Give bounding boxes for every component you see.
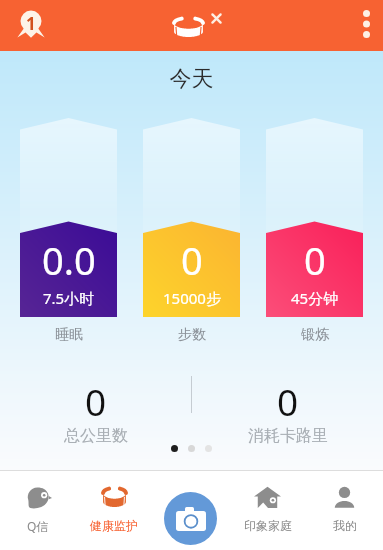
staticText: 印象家庭	[244, 518, 292, 533]
staticText: 我的	[333, 518, 357, 533]
staticText: 锻炼	[301, 326, 329, 344]
button[interactable]: 0.0	[20, 118, 117, 317]
staticText: 1	[26, 12, 36, 35]
staticText: 消耗卡路里	[248, 426, 328, 445]
staticText: 15000步	[163, 288, 221, 308]
staticText: 今天	[0, 65, 383, 93]
button[interactable]: 0	[266, 118, 363, 317]
staticText: 0	[277, 376, 299, 426]
staticText: Q信	[27, 518, 49, 534]
button[interactable]: Connected band	[172, 16, 205, 39]
button[interactable]: 健康监护	[76, 486, 152, 550]
staticText: 0	[304, 234, 326, 286]
staticText: 0	[85, 376, 107, 426]
staticText: 45分钟	[291, 288, 339, 308]
staticText: 步数	[178, 326, 206, 344]
button[interactable]: 印象家庭	[229, 486, 306, 550]
staticText: 健康监护	[90, 518, 138, 533]
staticText: 0.0	[42, 234, 96, 286]
button[interactable]: 我的	[306, 486, 383, 550]
button[interactable]: Q信	[0, 486, 76, 550]
button[interactable]: 0	[143, 118, 240, 317]
button[interactable]: More options	[343, 0, 383, 51]
staticText: 7.5小时	[43, 288, 95, 308]
button[interactable]: Disconnect	[211, 13, 222, 24]
staticText: 0	[181, 234, 203, 286]
staticText: 总公里数	[64, 426, 128, 445]
button[interactable]: Camera	[164, 492, 217, 545]
staticText: 睡眠	[55, 326, 83, 344]
button[interactable]: Rank	[17, 10, 45, 38]
